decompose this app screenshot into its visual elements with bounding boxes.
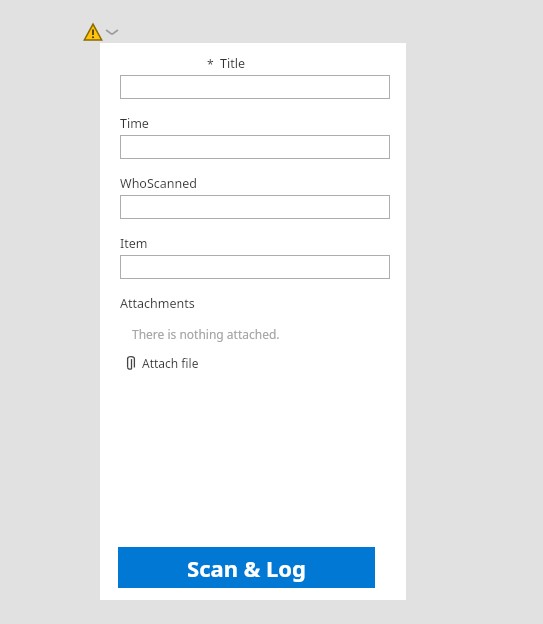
button[interactable]	[120, 195, 390, 219]
button[interactable]	[120, 135, 390, 159]
button[interactable]	[120, 255, 390, 279]
staticText: Scan & Log	[187, 553, 306, 583]
staticText: There is nothing attached.	[132, 326, 280, 342]
staticText: WhoScanned	[120, 175, 197, 192]
button[interactable]	[120, 75, 390, 99]
button[interactable]: Scan & Log	[118, 547, 375, 588]
button[interactable]: Expand	[105, 27, 119, 37]
staticText: Attach file	[142, 355, 199, 371]
staticText: *	[207, 56, 214, 72]
button[interactable]: Warning	[84, 23, 102, 41]
staticText: Title	[220, 55, 245, 72]
button[interactable]: Attach file	[126, 355, 199, 371]
staticText: Item	[120, 235, 148, 252]
staticText: Time	[120, 115, 149, 132]
staticText: Attachments	[120, 295, 195, 312]
